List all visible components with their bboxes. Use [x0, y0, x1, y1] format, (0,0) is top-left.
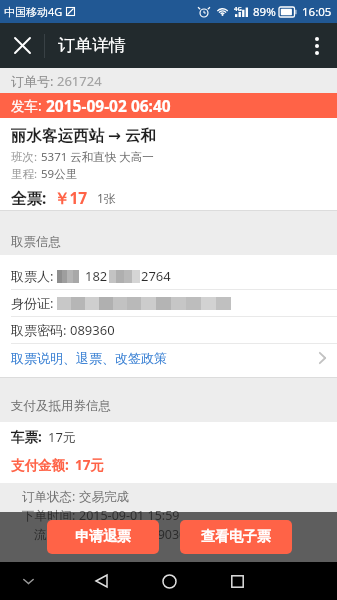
button[interactable]: More options: [297, 23, 337, 68]
staticText: 交易完成: [79, 489, 129, 505]
staticText: 流水号:: [34, 526, 79, 543]
staticText: 丽水客运西站 → 云和: [11, 124, 157, 145]
button[interactable]: Home: [145, 562, 193, 600]
staticText: 2764: [141, 267, 171, 285]
staticText: 里程:: [11, 166, 41, 182]
staticText: 申请退票: [75, 528, 131, 546]
staticText: 4G: [234, 5, 242, 13]
button[interactable]: Hide navigation: [0, 562, 56, 600]
staticText: 下单时间:: [22, 507, 79, 524]
staticText: 1张: [97, 190, 116, 206]
staticText: 17元: [75, 456, 104, 474]
staticText: 全票:: [11, 187, 51, 208]
staticText: 取票人:: [11, 267, 57, 285]
staticText: 17元: [48, 428, 76, 446]
staticText: 订单号:: [11, 72, 57, 90]
staticText: 取票密码:: [11, 321, 70, 339]
staticText: 查看电子票: [201, 528, 271, 546]
staticText: 订单详情: [58, 35, 126, 56]
staticText: 5371 云和直快 大高一: [41, 149, 154, 165]
staticText: 89%: [253, 4, 276, 20]
staticText: 中国移动4G: [4, 4, 63, 19]
staticText: 取票信息: [11, 234, 61, 250]
staticText: 59公里: [41, 166, 78, 182]
staticText: 车票:: [11, 428, 46, 446]
staticText: 支付金额:: [11, 456, 73, 474]
staticText: 支付及抵用券信息: [11, 398, 111, 414]
staticText: 2015090115590307: [79, 526, 194, 543]
staticText: 2015-09-01 15:59: [79, 507, 180, 524]
button[interactable]: Recent apps: [213, 562, 261, 600]
staticText: 取票说明、退票、改签政策: [11, 350, 167, 366]
staticText: 身份证:: [11, 294, 57, 312]
button[interactable]: 取票说明、退票、改签政策: [0, 344, 337, 377]
staticText: 182: [85, 267, 108, 285]
button[interactable]: Close: [0, 23, 44, 68]
staticText: 发车:: [11, 97, 46, 115]
staticText: 089360: [70, 321, 115, 339]
staticText: 16:05: [302, 4, 332, 20]
button[interactable]: 查看电子票: [180, 520, 292, 554]
staticText: 订单状态:: [22, 488, 79, 505]
staticText: ￥17: [54, 187, 88, 208]
staticText: 班次:: [11, 149, 41, 165]
button[interactable]: Back: [77, 562, 125, 600]
staticText: 261724: [57, 72, 102, 90]
button[interactable]: 申请退票: [47, 520, 159, 554]
staticText: 2015-09-02 06:40: [46, 95, 171, 116]
